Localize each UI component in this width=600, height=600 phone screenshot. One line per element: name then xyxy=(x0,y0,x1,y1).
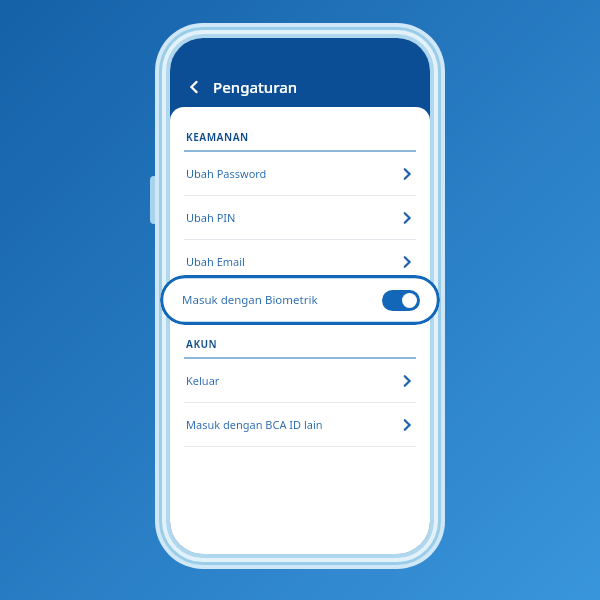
staticText: Pengaturan xyxy=(213,77,298,97)
other: Back xyxy=(186,79,202,95)
staticText: Masuk dengan BCA ID lain xyxy=(186,417,400,432)
button[interactable]: Back xyxy=(170,70,430,104)
staticText: Keluar xyxy=(186,373,400,388)
staticText: Ubah Email xyxy=(186,254,400,269)
staticText: Ubah PIN xyxy=(186,210,400,225)
staticText: Ubah Password xyxy=(186,166,400,181)
button[interactable]: Masuk dengan Biometrik xyxy=(160,275,440,325)
staticText: Masuk dengan Biometrik xyxy=(182,292,382,308)
button[interactable]: Masuk dengan BCA ID lain xyxy=(170,403,430,446)
button[interactable]: Ubah Password xyxy=(170,152,430,195)
staticText: AKUN xyxy=(186,337,218,351)
staticText: KEAMANAN xyxy=(186,130,249,144)
other: Masuk dengan Biometrik toggle xyxy=(382,290,420,311)
button[interactable]: Ubah PIN xyxy=(170,196,430,239)
button[interactable]: Ubah Email xyxy=(170,240,430,283)
button[interactable]: Keluar xyxy=(170,359,430,402)
